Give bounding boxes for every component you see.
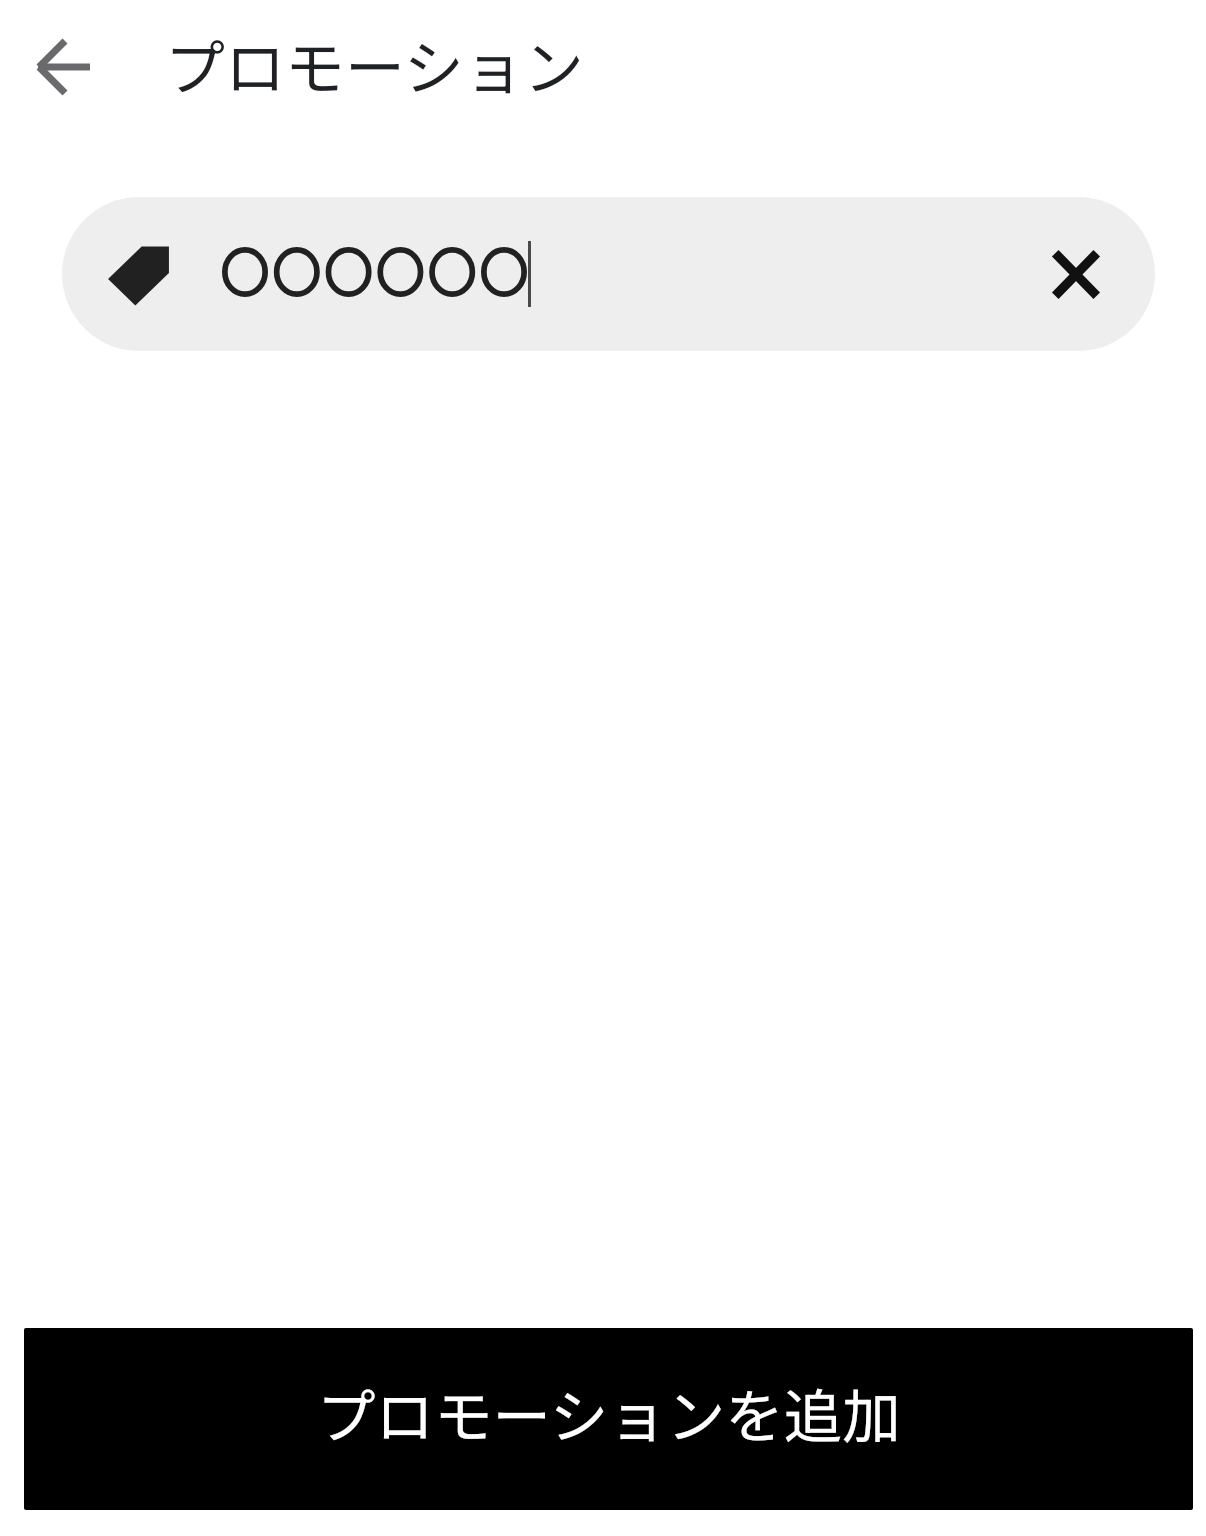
button[interactable]: プロモーションを追加 [24, 1328, 1193, 1510]
staticText: プロモーションを追加 [317, 1370, 901, 1455]
button[interactable]: Clear text [1027, 225, 1125, 323]
staticText: プロモーション [165, 20, 584, 107]
button[interactable]: Back [12, 15, 116, 119]
button[interactable]: Clear text [62, 197, 1155, 351]
